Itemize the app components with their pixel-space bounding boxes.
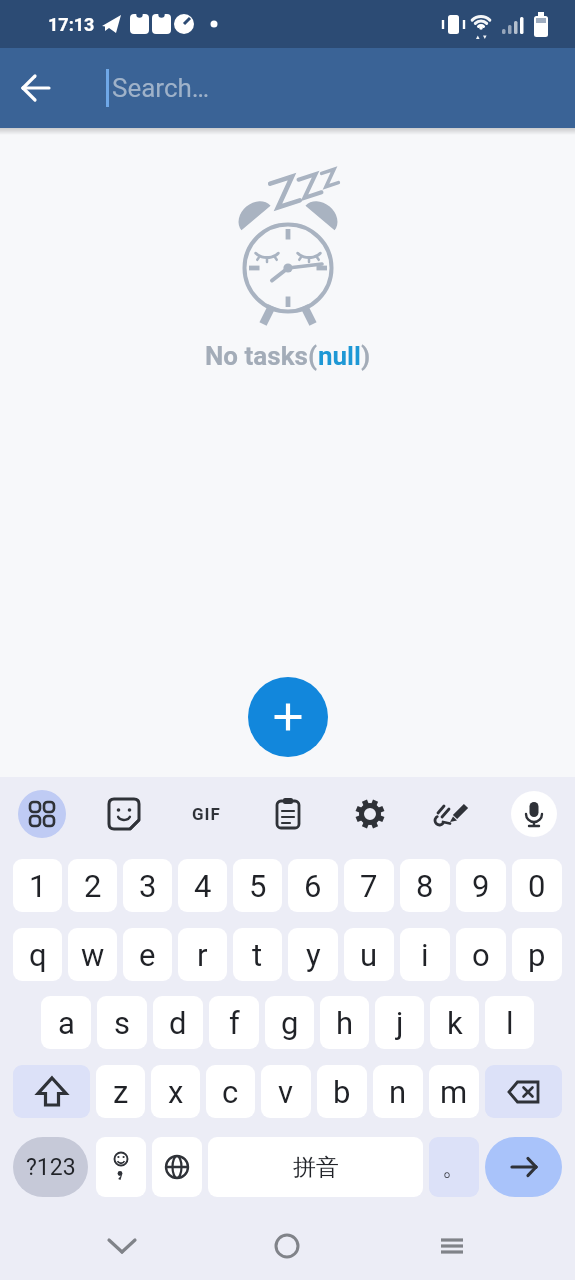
button[interactable]: z — [96, 1065, 145, 1118]
button[interactable]: o — [456, 928, 506, 981]
button[interactable]: u — [344, 928, 394, 981]
staticText: q — [29, 937, 47, 973]
button[interactable]: j — [375, 996, 424, 1049]
staticText: ?123 — [26, 1154, 76, 1181]
staticText: 3 — [139, 868, 157, 904]
staticText: ) — [361, 341, 371, 371]
button[interactable] — [248, 677, 328, 757]
button[interactable]: 6 — [288, 859, 338, 912]
button[interactable]: x — [151, 1065, 200, 1118]
button[interactable]: ?123 — [13, 1137, 88, 1197]
button[interactable]: GIF — [165, 777, 247, 851]
button[interactable] — [13, 1065, 90, 1118]
button[interactable]: 拼音 — [208, 1137, 423, 1197]
button[interactable]: g — [265, 996, 314, 1049]
button[interactable] — [0, 777, 83, 851]
button[interactable] — [18, 790, 66, 838]
button[interactable] — [485, 1137, 562, 1197]
button[interactable]: 9 — [456, 859, 506, 912]
staticText: 17:13 — [48, 14, 95, 35]
button[interactable]: f — [209, 996, 259, 1049]
button[interactable]: b — [317, 1065, 367, 1118]
staticText: 4 — [194, 868, 212, 904]
button[interactable] — [493, 777, 575, 851]
staticText: 1 — [29, 868, 47, 904]
button[interactable] — [96, 1137, 146, 1197]
staticText: GIF — [192, 804, 221, 824]
staticText: e — [139, 937, 156, 973]
button[interactable]: p — [512, 928, 562, 981]
button[interactable]: 7 — [344, 859, 394, 912]
button[interactable]: 0 — [512, 859, 562, 912]
staticText: c — [222, 1074, 239, 1110]
button[interactable]: 8 — [400, 859, 450, 912]
staticText: z — [113, 1074, 129, 1110]
button[interactable]: 2 — [68, 859, 117, 912]
button[interactable] — [485, 1065, 562, 1118]
staticText: d — [169, 1005, 187, 1041]
button[interactable]: s — [97, 996, 147, 1049]
button[interactable] — [83, 777, 165, 851]
button[interactable]: 1 — [13, 859, 62, 912]
button[interactable]: 4 — [178, 859, 227, 912]
button[interactable] — [511, 791, 557, 837]
staticText: u — [360, 937, 378, 973]
button[interactable]: a — [41, 996, 91, 1049]
button[interactable] — [428, 1222, 476, 1270]
staticText: b — [333, 1074, 351, 1110]
staticText: r — [197, 937, 208, 973]
staticText: y — [306, 937, 321, 973]
button[interactable]: y — [288, 928, 338, 981]
staticText: x — [168, 1074, 184, 1110]
button[interactable]: 。 — [429, 1137, 479, 1197]
staticText: p — [528, 937, 546, 973]
staticText: 5 — [249, 868, 267, 904]
button[interactable]: h — [320, 996, 369, 1049]
staticText: 9 — [472, 868, 490, 904]
staticText: n — [389, 1074, 407, 1110]
button[interactable]: c — [206, 1065, 255, 1118]
staticText: null — [318, 341, 361, 371]
staticText: 7 — [360, 868, 378, 904]
button[interactable]: q — [13, 928, 62, 981]
staticText: j — [396, 1005, 404, 1041]
button[interactable]: l — [485, 996, 534, 1049]
button[interactable] — [411, 777, 493, 851]
staticText: 。 — [442, 1152, 466, 1182]
staticText: o — [472, 937, 490, 973]
button[interactable]: i — [400, 928, 450, 981]
button[interactable]: v — [261, 1065, 311, 1118]
staticText: s — [114, 1005, 130, 1041]
staticText: 2 — [84, 868, 102, 904]
button[interactable] — [152, 1137, 202, 1197]
staticText: l — [506, 1005, 514, 1041]
button[interactable] — [263, 1222, 311, 1270]
button[interactable] — [329, 777, 411, 851]
button[interactable]: w — [68, 928, 117, 981]
staticText: t — [252, 937, 263, 973]
button[interactable] — [0, 52, 72, 124]
button[interactable] — [98, 1222, 146, 1270]
staticText: a — [58, 1005, 75, 1041]
staticText: No tasks( — [205, 341, 318, 371]
button[interactable]: n — [373, 1065, 423, 1118]
staticText: m — [440, 1074, 468, 1110]
button[interactable]: m — [429, 1065, 479, 1118]
staticText: w — [81, 937, 105, 973]
button[interactable]: e — [123, 928, 172, 981]
staticText: v — [278, 1074, 294, 1110]
button[interactable]: 5 — [233, 859, 282, 912]
staticText: f — [229, 1005, 240, 1041]
button[interactable]: d — [153, 996, 203, 1049]
staticText: i — [421, 937, 429, 973]
button[interactable]: r — [178, 928, 227, 981]
button[interactable] — [247, 777, 329, 851]
staticText: 8 — [416, 868, 434, 904]
staticText: 拼音 — [293, 1153, 339, 1182]
button[interactable]: k — [430, 996, 479, 1049]
button[interactable]: t — [233, 928, 282, 981]
staticText: k — [447, 1005, 463, 1041]
staticText: h — [336, 1005, 354, 1041]
staticText: g — [281, 1005, 299, 1041]
button[interactable]: 3 — [123, 859, 172, 912]
